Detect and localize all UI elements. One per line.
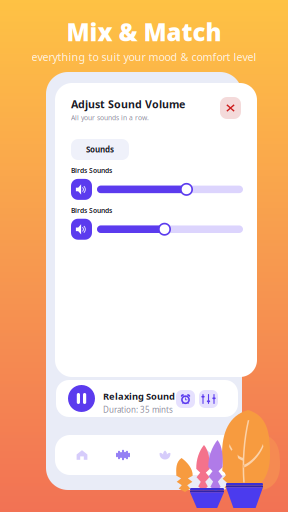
button[interactable]: Timer — [176, 390, 195, 408]
staticText: Duration: 35 mints — [103, 404, 173, 415]
staticText: Adjust Sound Volume — [71, 97, 185, 111]
staticText: Mix & Match — [66, 16, 221, 48]
button[interactable]: Meditate — [154, 445, 176, 465]
button[interactable]: Mute — [71, 219, 92, 240]
button[interactable]: Sounds — [112, 445, 134, 465]
button[interactable]: Pause — [68, 385, 95, 412]
button[interactable]: Mute — [71, 179, 92, 200]
button[interactable]: Sounds — [71, 139, 129, 160]
staticText: All your sounds in a row. — [71, 113, 149, 122]
staticText: Relaxing Sound — [103, 390, 175, 402]
button[interactable]: Equalizer settings — [199, 390, 218, 408]
button[interactable]: Close — [220, 97, 241, 119]
staticText: everything to suit your mood & comfort l… — [31, 50, 256, 64]
staticText: Sounds — [86, 144, 114, 155]
staticText: Birds Sounds — [71, 206, 112, 215]
button[interactable]: Profile — [196, 445, 218, 465]
button[interactable]: Home — [71, 445, 93, 465]
staticText: Birds Sounds — [71, 166, 112, 175]
